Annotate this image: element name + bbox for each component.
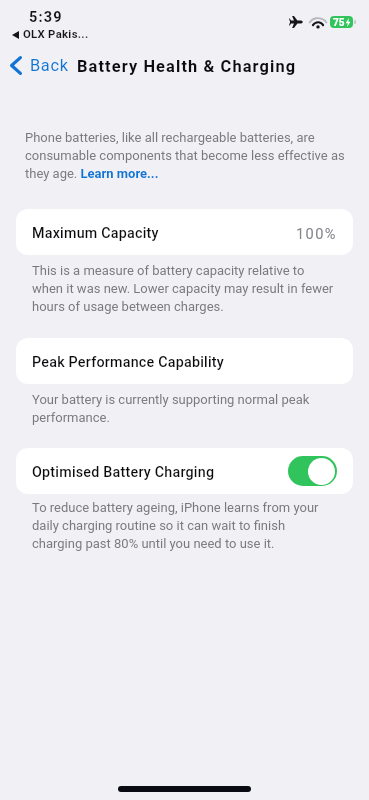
button[interactable]: Back [7, 54, 75, 77]
button[interactable]: Optimised Battery Charging, on [288, 456, 337, 486]
staticText: Back [30, 56, 69, 75]
staticText: Maximum Capacity [32, 225, 159, 242]
staticText: Peak Performance Capability [32, 354, 225, 371]
button[interactable]: Maximum Capacity [16, 209, 353, 255]
button[interactable]: Peak Performance Capability [16, 338, 353, 384]
staticText: To reduce battery ageing, iPhone learns … [32, 500, 335, 551]
other: Wi-Fi [312, 17, 324, 28]
other: Aeroplane mode [289, 16, 303, 28]
staticText: Battery Health & Charging [77, 57, 297, 76]
staticText: 75 [333, 17, 345, 29]
other: Battery 75 percent, charging [330, 16, 356, 28]
button[interactable]: Optimised Battery Charging [16, 448, 353, 494]
staticText: Your battery is currently supporting nor… [32, 392, 335, 425]
staticText: OLX Pakis... [23, 28, 89, 41]
staticText: This is a measure of battery capacity re… [32, 263, 335, 314]
staticText: Phone batteries, like all rechargeable b… [25, 130, 349, 181]
staticText: 100% [296, 225, 337, 242]
staticText: Optimised Battery Charging [32, 464, 215, 481]
staticText: 5:39 [29, 9, 63, 26]
